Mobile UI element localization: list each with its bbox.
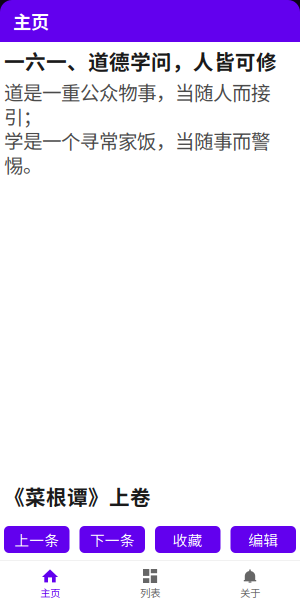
staticText: 道是一重公众物事，当随人而接引； 学是一个寻常家饭，当随事而警惕。 xyxy=(4,78,270,178)
staticText: 上一条 xyxy=(14,529,59,550)
button[interactable]: 编辑 xyxy=(230,526,296,553)
button[interactable]: 收藏 xyxy=(155,526,220,553)
staticText: 《菜根谭》上卷 xyxy=(4,481,151,511)
button[interactable]: 下一条 xyxy=(79,526,145,553)
button[interactable]: 关于 xyxy=(200,560,300,604)
button[interactable]: 列表 xyxy=(100,560,200,604)
button[interactable]: 主页 xyxy=(0,560,100,604)
staticText: 主页 xyxy=(13,8,49,34)
staticText: 下一条 xyxy=(90,529,135,550)
staticText: 关于 xyxy=(240,585,260,600)
staticText: 收藏 xyxy=(173,529,203,550)
staticText: 列表 xyxy=(140,585,160,600)
staticText: 一六一、道德学问，人皆可修 xyxy=(4,46,277,76)
staticText: 编辑 xyxy=(248,529,278,550)
staticText: 主页 xyxy=(40,585,60,600)
button[interactable]: 上一条 xyxy=(4,526,69,553)
